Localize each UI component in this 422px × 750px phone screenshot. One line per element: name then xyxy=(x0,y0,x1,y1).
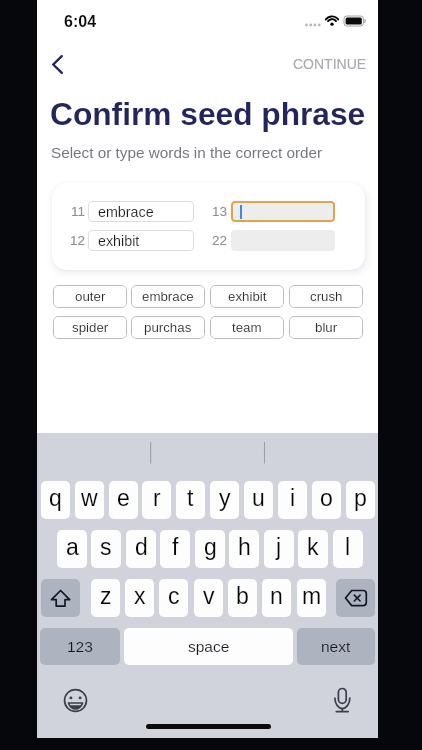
button[interactable]: b xyxy=(228,579,257,617)
button[interactable]: a xyxy=(57,530,87,568)
staticText: m xyxy=(302,583,322,609)
button[interactable]: c xyxy=(159,579,188,617)
button[interactable]: p xyxy=(346,481,375,519)
staticText: l xyxy=(345,534,351,560)
button[interactable]: exhibit xyxy=(88,230,194,251)
button[interactable]: blur xyxy=(289,316,363,339)
staticText: outer xyxy=(75,289,106,304)
button[interactable]: Back xyxy=(40,47,74,81)
button[interactable]: 123 xyxy=(40,628,120,665)
staticText: e xyxy=(117,485,130,511)
staticText: 11 xyxy=(71,204,86,219)
button[interactable]: d xyxy=(126,530,156,568)
button[interactable]: s xyxy=(91,530,121,568)
button[interactable]: n xyxy=(262,579,291,617)
button[interactable]: CONTINUE xyxy=(285,48,375,80)
staticText: 22 xyxy=(212,233,228,248)
button[interactable]: Dictation xyxy=(330,684,354,716)
button[interactable]: w xyxy=(75,481,104,519)
staticText: next xyxy=(321,638,351,655)
staticText: i xyxy=(290,485,296,511)
staticText: space xyxy=(188,638,230,655)
button[interactable]: z xyxy=(91,579,120,617)
button[interactable]: space xyxy=(124,628,293,665)
staticText: w xyxy=(81,485,98,511)
staticText: spider xyxy=(72,320,109,335)
staticText: z xyxy=(100,583,112,609)
staticText: q xyxy=(49,485,62,511)
staticText: embrace xyxy=(98,204,154,220)
button[interactable] xyxy=(231,201,335,222)
staticText: b xyxy=(236,583,249,609)
button[interactable]: t xyxy=(176,481,205,519)
staticText: j xyxy=(276,534,282,560)
button[interactable]: m xyxy=(297,579,326,617)
button[interactable]: embrace xyxy=(131,285,205,308)
staticText: exhibit xyxy=(98,233,140,249)
button[interactable]: Emoji xyxy=(60,685,90,715)
staticText: Confirm seed phrase xyxy=(50,96,366,131)
staticText: 12 xyxy=(70,233,86,248)
button[interactable]: crush xyxy=(289,285,363,308)
button[interactable]: Shift xyxy=(41,579,80,617)
staticText: f xyxy=(172,534,179,560)
staticText: d xyxy=(135,534,148,560)
staticText: CONTINUE xyxy=(293,56,367,72)
staticText: Select or type words in the correct orde… xyxy=(51,144,323,161)
button[interactable]: l xyxy=(333,530,363,568)
staticText: y xyxy=(219,485,231,511)
button[interactable]: exhibit xyxy=(210,285,284,308)
staticText: a xyxy=(66,534,79,560)
button[interactable]: purchas xyxy=(131,316,205,339)
button[interactable]: outer xyxy=(53,285,127,308)
staticText: 13 xyxy=(212,204,228,219)
button[interactable]: f xyxy=(160,530,190,568)
staticText: 123 xyxy=(67,638,93,655)
staticText: r xyxy=(153,485,161,511)
button[interactable]: r xyxy=(142,481,171,519)
staticText: 6:04 xyxy=(64,13,97,31)
staticText: c xyxy=(168,583,180,609)
staticText: g xyxy=(204,534,217,560)
staticText: v xyxy=(203,583,215,609)
button[interactable]: x xyxy=(125,579,154,617)
button[interactable]: spider xyxy=(53,316,127,339)
staticText: p xyxy=(354,485,367,511)
button[interactable]: i xyxy=(278,481,307,519)
button[interactable]: u xyxy=(244,481,273,519)
button[interactable]: g xyxy=(195,530,225,568)
staticText: blur xyxy=(315,320,338,335)
staticText: k xyxy=(307,534,319,560)
staticText: embrace xyxy=(142,289,194,304)
button[interactable]: h xyxy=(229,530,259,568)
button[interactable]: next xyxy=(297,628,375,665)
button[interactable]: Backspace xyxy=(336,579,375,617)
button[interactable]: o xyxy=(312,481,341,519)
staticText: purchas xyxy=(144,320,192,335)
staticText: team xyxy=(232,320,262,335)
staticText: u xyxy=(252,485,265,511)
button[interactable]: j xyxy=(264,530,294,568)
staticText: x xyxy=(134,583,146,609)
button[interactable]: y xyxy=(210,481,239,519)
button[interactable]: team xyxy=(210,316,284,339)
staticText: n xyxy=(270,583,283,609)
staticText: o xyxy=(320,485,333,511)
staticText: exhibit xyxy=(228,289,267,304)
staticText: crush xyxy=(310,289,343,304)
button[interactable]: q xyxy=(41,481,70,519)
staticText: h xyxy=(238,534,251,560)
staticText: s xyxy=(100,534,112,560)
button[interactable]: v xyxy=(194,579,223,617)
button[interactable]: e xyxy=(109,481,138,519)
staticText: t xyxy=(187,485,194,511)
button[interactable]: k xyxy=(298,530,328,568)
button[interactable]: embrace xyxy=(88,201,194,222)
